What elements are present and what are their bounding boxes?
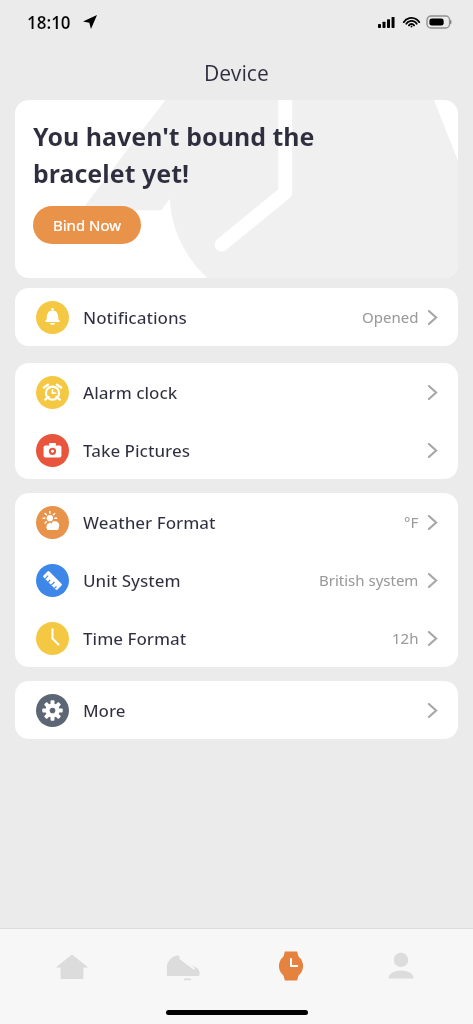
staticText: British system xyxy=(319,570,419,590)
button[interactable]: Alarm clock xyxy=(15,363,458,421)
staticText: Device xyxy=(204,59,269,88)
staticText: Bind Now xyxy=(53,215,121,235)
staticText: Unit System xyxy=(83,569,319,592)
staticText: Alarm clock xyxy=(83,381,428,404)
staticText: Opened xyxy=(362,307,419,327)
staticText: Notifications xyxy=(83,306,362,329)
button[interactable]: Time Format xyxy=(15,609,458,667)
staticText: You haven't bound the bracelet yet! xyxy=(33,119,315,190)
staticText: Weather Format xyxy=(83,511,404,534)
button[interactable]: Weather Format xyxy=(15,493,458,551)
staticText: °F xyxy=(404,512,419,532)
staticText: 12h xyxy=(392,628,419,648)
button[interactable]: Activity xyxy=(144,941,220,991)
button[interactable]: Notifications xyxy=(15,288,458,346)
staticText: Time Format xyxy=(83,627,392,650)
button[interactable]: Device xyxy=(253,941,329,991)
button[interactable]: Unit System xyxy=(15,551,458,609)
staticText: Take Pictures xyxy=(83,439,428,462)
staticText: More xyxy=(83,699,428,722)
button[interactable]: Take Pictures xyxy=(15,421,458,479)
button[interactable]: Home xyxy=(34,941,110,991)
button[interactable]: Profile xyxy=(363,941,439,991)
staticText: 18:10 xyxy=(27,11,71,34)
button[interactable]: More xyxy=(15,681,458,739)
button[interactable]: Bind Now xyxy=(33,206,141,244)
